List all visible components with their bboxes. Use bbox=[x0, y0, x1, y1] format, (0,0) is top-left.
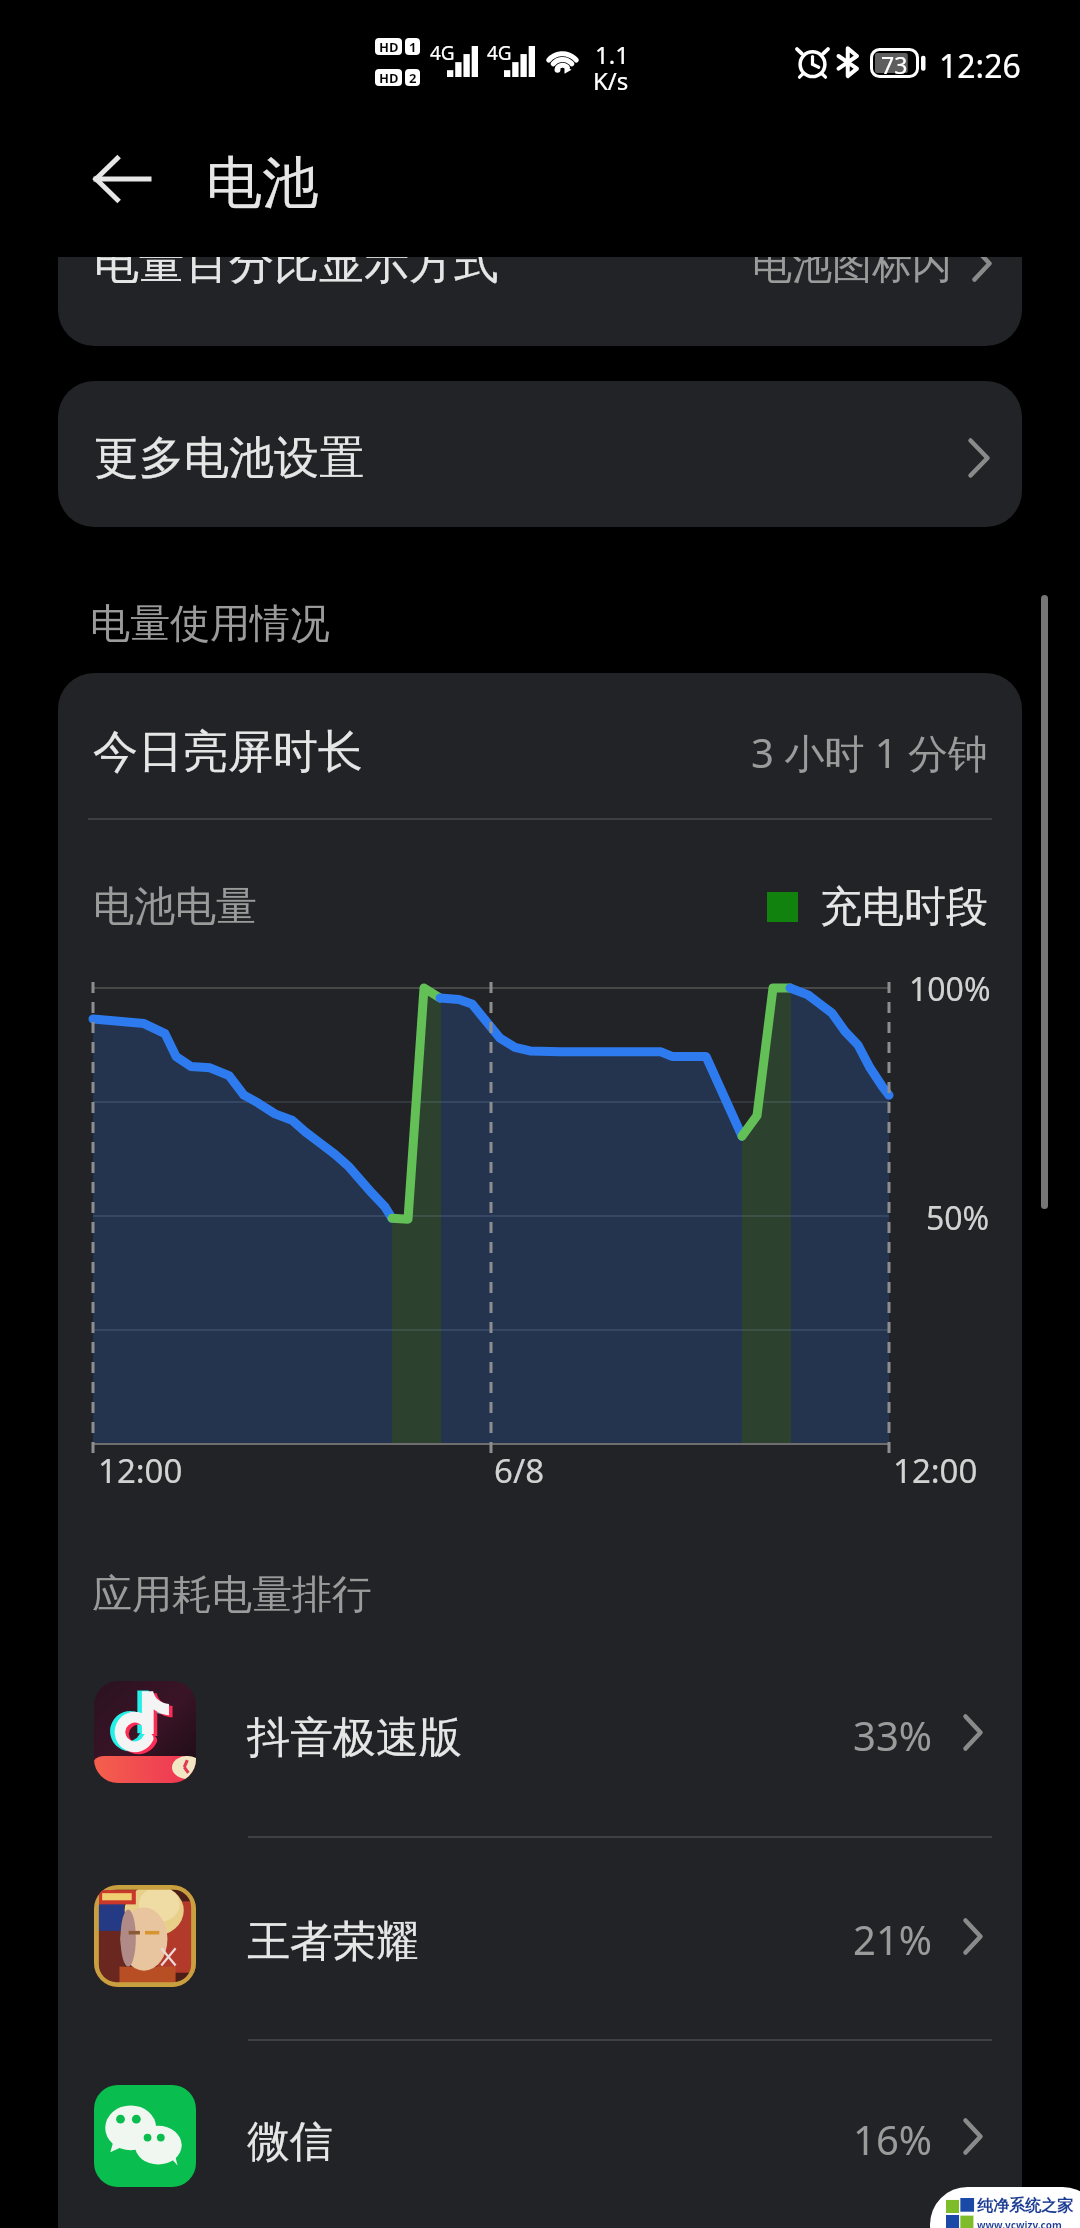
button[interactable]: Back bbox=[72, 129, 172, 229]
button[interactable]: 更多电池设置 bbox=[58, 381, 1022, 527]
staticText: 3 小时 1 分钟 bbox=[751, 725, 988, 780]
button[interactable]: 王者荣耀 bbox=[94, 1836, 983, 2036]
staticText: 50% bbox=[926, 1196, 990, 1240]
staticText: 纯净系统之家 bbox=[977, 2196, 1073, 2216]
staticText: 12:26 bbox=[939, 44, 1021, 88]
staticText: 电量使用情况 bbox=[90, 598, 330, 648]
staticText: 电池图标内 bbox=[752, 257, 952, 289]
staticText: 16% bbox=[853, 2112, 932, 2166]
staticText: 2 bbox=[409, 69, 417, 86]
staticText: 100% bbox=[909, 967, 991, 1011]
staticText: 更多电池设置 bbox=[94, 430, 364, 487]
staticText: 4G bbox=[487, 40, 512, 66]
staticText: 抖音极速版 bbox=[247, 1711, 462, 1765]
staticText: K/s bbox=[593, 64, 629, 97]
staticText: 王者荣耀 bbox=[247, 1915, 419, 1969]
staticText: www.ycwjzy.com bbox=[977, 2218, 1062, 2228]
button[interactable]: 微信 bbox=[94, 2036, 983, 2228]
staticText: 1 bbox=[409, 38, 417, 55]
staticText: 电量百分比显示方式 bbox=[94, 257, 499, 292]
staticText: 1.1 bbox=[595, 38, 629, 71]
staticText: 电池 bbox=[206, 148, 318, 219]
staticText: 微信 bbox=[247, 2115, 333, 2169]
staticText: 4G bbox=[430, 40, 455, 66]
staticText: 充电时段 bbox=[820, 881, 988, 934]
button[interactable]: 电量百分比显示方式 bbox=[58, 257, 1022, 346]
staticText: HD bbox=[379, 69, 399, 86]
staticText: 12:00 bbox=[893, 1448, 978, 1493]
staticText: HD bbox=[379, 38, 399, 55]
staticText: 应用耗电量排行 bbox=[92, 1569, 372, 1619]
staticText: 73 bbox=[881, 49, 908, 80]
staticText: 电池电量 bbox=[93, 881, 257, 933]
staticText: 今日亮屏时长 bbox=[93, 724, 363, 781]
staticText: 33% bbox=[853, 1708, 932, 1762]
button[interactable]: 抖音极速版 bbox=[94, 1632, 983, 1832]
staticText: 21% bbox=[853, 1912, 932, 1966]
staticText: 6/8 bbox=[494, 1448, 545, 1493]
staticText: 12:00 bbox=[98, 1448, 183, 1493]
